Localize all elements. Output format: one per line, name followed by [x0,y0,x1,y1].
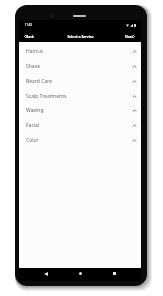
button[interactable]: Home [75,268,86,279]
staticText: Next [125,34,133,38]
button[interactable]: Waxing [19,103,141,118]
staticText: Scalp Treatments [26,93,67,100]
button[interactable]: Back [19,32,39,40]
button[interactable]: Color [19,133,141,148]
button[interactable]: Back [40,268,51,279]
staticText: Color [26,137,39,144]
button[interactable]: Next [121,32,141,40]
staticText: Waxing [26,107,44,114]
button[interactable]: Haircut [19,44,141,59]
button[interactable]: Recent apps [109,268,120,279]
button[interactable]: Shave [19,59,141,74]
staticText: Haircut [26,48,44,55]
button[interactable]: Scalp Treatments [19,89,141,104]
staticText: Shave [26,63,41,70]
staticText: Back [26,34,34,38]
button[interactable]: Beard Care [19,74,141,89]
staticText: Facial [26,122,40,129]
staticText: 11:33 [25,23,32,27]
staticText: Beard Care [26,78,52,85]
button[interactable]: Facial [19,118,141,133]
staticText: Select a Service [67,34,94,39]
